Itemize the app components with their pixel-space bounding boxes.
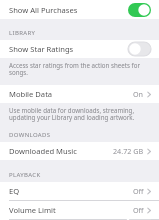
staticText: Volume Limit — [9, 205, 56, 215]
button[interactable]: Mobile Data — [0, 85, 159, 103]
button[interactable]: Switch on — [128, 3, 151, 17]
staticText: 24.72 GB — [113, 146, 144, 156]
staticText: DOWNLOADS — [9, 131, 51, 139]
staticText: Use mobile data for downloads, streaming… — [9, 106, 143, 122]
staticText: Downloaded Music — [9, 146, 77, 156]
button[interactable]: Downloaded Music — [0, 142, 159, 160]
staticText: On — [133, 89, 144, 99]
button[interactable]: EQ — [0, 182, 159, 201]
staticText: LIBRARY — [9, 29, 36, 37]
button[interactable]: Switch off — [128, 42, 151, 56]
button[interactable]: Show All Purchases — [0, 0, 159, 19]
staticText: Access star ratings from the action shee… — [9, 61, 143, 77]
button[interactable]: Show Star Ratings — [0, 40, 159, 58]
staticText: PLAYBACK — [9, 171, 41, 179]
staticText: Off — [133, 205, 144, 215]
staticText: Off — [133, 186, 144, 196]
staticText: Mobile Data — [9, 89, 53, 99]
staticText: Show Star Ratings — [9, 44, 74, 54]
staticText: EQ — [9, 186, 20, 196]
button[interactable]: Volume Limit — [0, 201, 159, 220]
staticText: Show All Purchases — [9, 5, 78, 15]
